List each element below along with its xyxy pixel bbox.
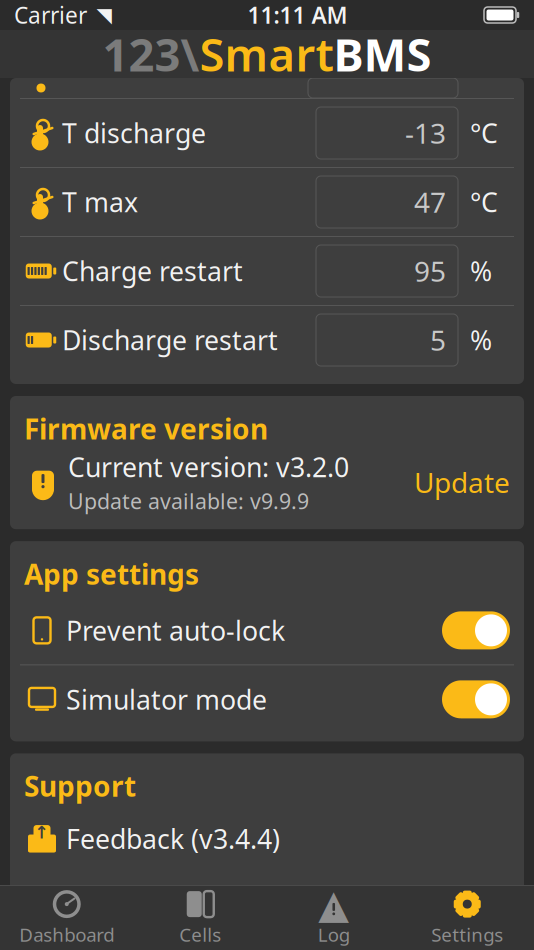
staticText: Settings xyxy=(431,922,503,947)
button[interactable]: Current version: v3.2.0 xyxy=(10,451,524,513)
staticText: T max xyxy=(62,184,138,220)
staticText: Update available: v9.9.9 xyxy=(68,487,309,515)
staticText: \ xyxy=(180,24,199,84)
button[interactable]: Simulator mode xyxy=(10,665,524,733)
staticText: Charge restart xyxy=(62,253,243,289)
staticText: °C xyxy=(470,115,498,151)
staticText: Simulator mode xyxy=(66,682,267,717)
staticText: ◥ xyxy=(96,4,111,26)
staticText: 47 xyxy=(414,183,446,221)
staticText: Carrier xyxy=(14,0,87,30)
button[interactable]: ▲ xyxy=(267,886,400,950)
staticText: -13 xyxy=(405,114,446,152)
staticText: Update xyxy=(414,464,510,501)
staticText: Prevent auto-lock xyxy=(66,613,285,648)
staticText: 5 xyxy=(430,321,446,359)
staticText: Support xyxy=(24,767,136,805)
staticText: ▲ xyxy=(318,881,349,927)
staticText: Log xyxy=(318,922,350,947)
button[interactable]: Settings xyxy=(400,886,534,950)
button[interactable]: ↑ xyxy=(10,808,524,868)
staticText: Firmware version xyxy=(24,410,268,447)
staticText: 11:11 AM xyxy=(247,0,347,30)
button[interactable]: T max xyxy=(10,168,524,236)
staticText: T discharge xyxy=(62,115,206,151)
staticText: App settings xyxy=(24,555,199,592)
staticText: Discharge restart xyxy=(62,322,278,358)
staticText: Current version: v3.2.0 xyxy=(68,449,349,485)
staticText: BMS xyxy=(333,24,431,84)
staticText: 123 xyxy=(102,24,180,84)
staticText: Feedback (v3.4.4) xyxy=(66,821,280,856)
staticText: Dashboard xyxy=(19,922,114,947)
button[interactable]: Discharge restart xyxy=(10,306,524,374)
staticText: ↑ xyxy=(34,823,49,842)
staticText: Cells xyxy=(179,922,221,947)
staticText: % xyxy=(470,322,492,358)
button[interactable]: T discharge xyxy=(10,99,524,167)
button[interactable]: Cells xyxy=(133,886,267,950)
staticText: Smart xyxy=(199,24,333,84)
button[interactable]: Charge restart xyxy=(10,237,524,305)
staticText: % xyxy=(470,253,492,289)
staticText xyxy=(87,0,93,30)
staticText: 95 xyxy=(414,252,446,290)
staticText: °C xyxy=(470,184,498,220)
button[interactable]: Dashboard xyxy=(0,886,133,950)
button[interactable]: Prevent auto-lock xyxy=(10,596,524,664)
